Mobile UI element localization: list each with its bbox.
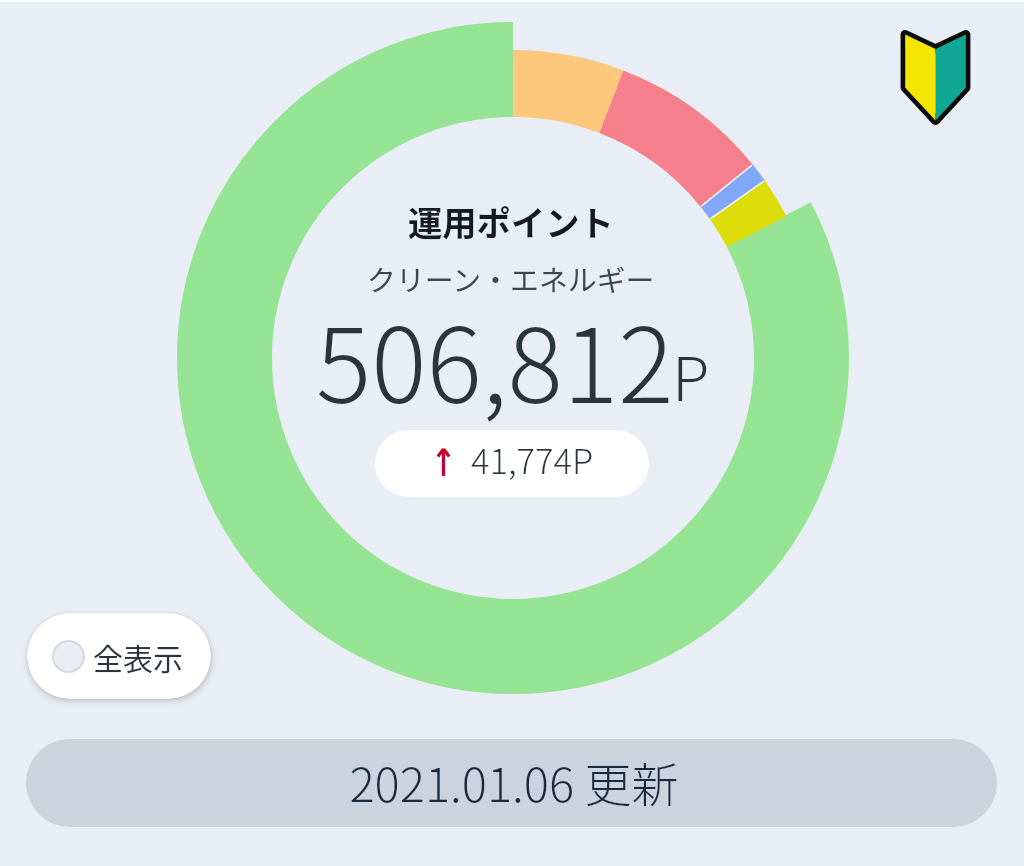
button[interactable]: 41,774P — [375, 430, 649, 497]
staticText: 全表示 — [93, 635, 183, 678]
staticText: P — [672, 330, 710, 418]
button[interactable]: 全表示 — [27, 613, 211, 699]
staticText: クリーン・エネルギー — [367, 257, 655, 299]
staticText: 2021.01.06 更新 — [349, 747, 679, 815]
staticText: 運用ポイント — [408, 196, 614, 246]
button[interactable]: Beginner investor badge — [899, 29, 972, 126]
staticText: 506,812 — [316, 283, 674, 433]
staticText: 41,774P — [471, 434, 594, 484]
button[interactable]: 2021.01.06 更新 — [26, 739, 997, 827]
